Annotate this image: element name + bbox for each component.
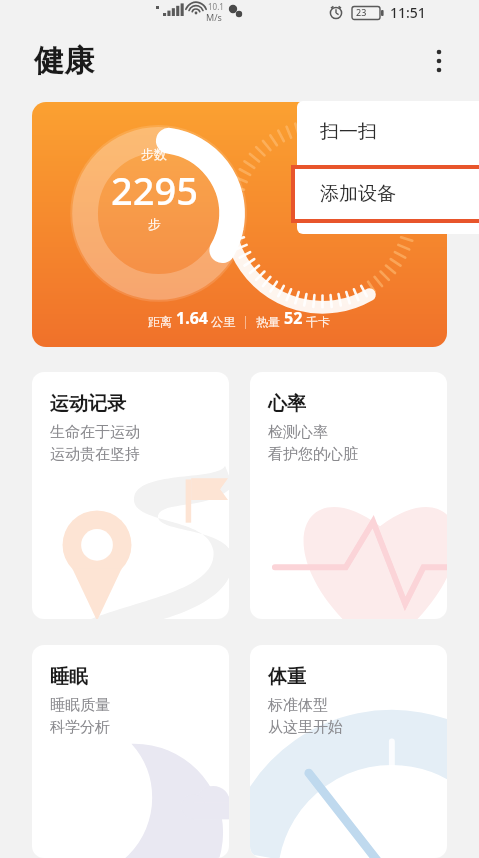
button[interactable]: 运动记录 — [32, 372, 229, 619]
staticText: M/s — [206, 11, 222, 23]
staticText: 检测心率 — [268, 423, 328, 442]
staticText: 心率 — [268, 392, 306, 416]
staticText: 扫一扫 — [320, 120, 377, 144]
button[interactable]: 体重 — [250, 645, 447, 858]
staticText: | — [236, 313, 256, 329]
staticText: 11:51 — [390, 3, 426, 22]
button[interactable]: 扫一扫 — [297, 101, 479, 163]
staticText: 运动记录 — [50, 392, 126, 416]
staticText: 从这里开始 — [268, 718, 343, 737]
staticText: 睡眠质量 — [50, 696, 110, 715]
staticText: 千卡 — [303, 313, 331, 329]
staticText: 步 — [148, 216, 161, 232]
staticText: 52 — [284, 307, 303, 329]
staticText: 10.1 — [208, 1, 224, 12]
staticText: 睡眠 — [50, 665, 88, 689]
staticText: 健康 — [34, 42, 94, 80]
staticText: 生命在于运动 — [50, 423, 140, 442]
button[interactable]: 添加设备 — [291, 165, 479, 223]
staticText: 距离 — [148, 313, 176, 329]
staticText: 标准体型 — [268, 696, 328, 715]
staticText: 添加设备 — [320, 182, 396, 206]
staticText: 分钟 — [295, 205, 321, 221]
staticText: 1.64 — [176, 307, 208, 329]
staticText: 热量 — [256, 313, 284, 329]
button[interactable]: More options — [417, 39, 461, 83]
staticText: 科学分析 — [50, 718, 110, 737]
button[interactable]: 心率 — [250, 372, 447, 619]
staticText: 看护您的心脏 — [268, 445, 358, 464]
staticText: 体重 — [268, 665, 306, 689]
staticText: 公里 — [208, 313, 236, 329]
staticText: 运动贵在坚持 — [50, 445, 140, 464]
button[interactable]: 睡眠 — [32, 645, 229, 858]
staticText: 2295 — [111, 164, 198, 216]
staticText: 步数 — [141, 146, 167, 162]
button[interactable]: 步数 — [32, 102, 447, 347]
staticText: 23 — [356, 6, 367, 18]
